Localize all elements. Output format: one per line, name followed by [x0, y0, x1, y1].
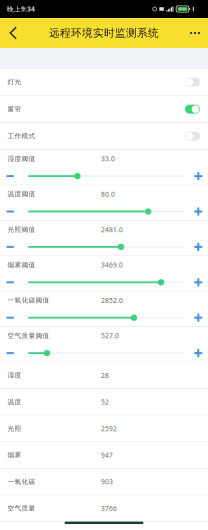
- staticText: 光照: [7, 424, 21, 433]
- staticText: 2481.0: [101, 225, 123, 234]
- staticText: 光照阈值: [7, 225, 35, 234]
- staticText: 温度阈值: [7, 190, 35, 198]
- staticText: 烟雾阈值: [7, 261, 35, 269]
- staticText: 一氧化碳阈值: [7, 296, 49, 304]
- staticText: 湿度阈值: [7, 155, 35, 163]
- button[interactable]: Increase 一氧化碳阈值: [192, 311, 205, 324]
- staticText: 903: [101, 477, 113, 486]
- button[interactable]: Increase 烟雾阈值: [192, 276, 205, 289]
- staticText: 一氧化碳: [7, 478, 35, 486]
- button[interactable]: Increase 空气质量阈值: [192, 347, 205, 360]
- staticText: 晚上9:34: [7, 4, 35, 14]
- button[interactable]: Increase 湿度阈值: [192, 170, 205, 183]
- button[interactable]: Increase 温度阈值: [192, 205, 205, 218]
- staticText: 3766: [101, 504, 117, 513]
- staticText: 工作模式: [7, 132, 35, 140]
- staticText: 28: [101, 371, 109, 380]
- button[interactable]: Back: [0, 18, 27, 48]
- button[interactable]: Decrease 湿度阈值: [4, 170, 17, 183]
- button[interactable]: 工作模式: [0, 123, 208, 150]
- button[interactable]: Decrease 烟雾阈值: [4, 276, 17, 289]
- button[interactable]: Decrease 温度阈值: [4, 205, 17, 218]
- button[interactable]: Increase 光照阈值: [192, 240, 205, 253]
- staticText: 远程环境实时监测系统: [49, 26, 159, 39]
- button[interactable]: 窗帘: [0, 96, 208, 123]
- staticText: 2592: [101, 424, 117, 433]
- staticText: 3469.0: [101, 260, 123, 269]
- staticText: 2852.0: [101, 296, 123, 305]
- staticText: 527.0: [101, 331, 119, 340]
- button[interactable]: Decrease 一氧化碳阈值: [4, 311, 17, 324]
- staticText: 温度: [7, 398, 21, 406]
- staticText: 947: [101, 451, 113, 460]
- staticText: 空气质量阈值: [7, 332, 49, 340]
- button[interactable]: 灯光: [0, 69, 208, 96]
- staticText: 空气质量: [7, 504, 35, 512]
- staticText: 52: [101, 397, 109, 406]
- button[interactable]: Decrease 光照阈值: [4, 240, 17, 253]
- button[interactable]: More options: [180, 18, 208, 48]
- staticText: 灯光: [7, 78, 21, 86]
- staticText: 烟雾: [7, 451, 21, 459]
- staticText: 湿度: [7, 371, 21, 379]
- staticText: 80.0: [101, 190, 115, 199]
- staticText: 窗帘: [7, 105, 21, 113]
- staticText: 33.0: [101, 154, 115, 163]
- button[interactable]: Decrease 空气质量阈值: [4, 347, 17, 360]
